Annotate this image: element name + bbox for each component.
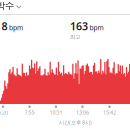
button[interactable]: 박수 — [0, 0, 25, 11]
staticText: 박수 — [0, 0, 14, 11]
staticText: 13:06 — [76, 109, 89, 116]
staticText: 8 — [1, 19, 7, 33]
staticText: 시간(오후 8시) — [59, 119, 92, 126]
staticText: bpm — [9, 23, 23, 32]
staticText: 최고 — [70, 34, 80, 40]
staticText: bpm — [89, 23, 103, 32]
staticText: 5:20 — [0, 109, 8, 116]
staticText: 163 — [70, 19, 88, 33]
staticText: 15:42 — [103, 109, 116, 116]
staticText: 10:31 — [49, 109, 62, 116]
staticText: 7:55 — [24, 109, 34, 116]
